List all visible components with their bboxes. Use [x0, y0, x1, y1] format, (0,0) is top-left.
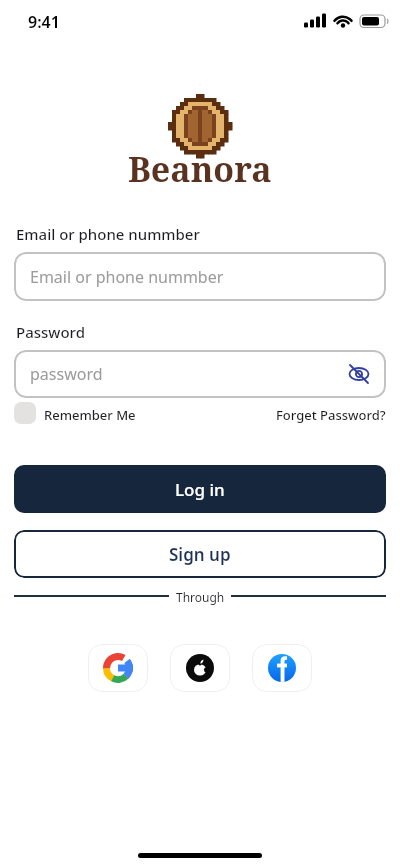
button[interactable]: Log in: [14, 465, 386, 513]
button[interactable]: [88, 644, 148, 692]
staticText: Beanora: [128, 146, 272, 192]
staticText: Email or phone nummber: [16, 224, 200, 244]
staticText: Sign up: [169, 543, 231, 566]
button[interactable]: Remember Me: [44, 406, 136, 424]
staticText: 9:41: [28, 11, 60, 33]
button[interactable]: [346, 361, 372, 387]
button[interactable]: [14, 402, 36, 424]
staticText: Email or phone nummber: [30, 266, 224, 288]
button[interactable]: Forget Password?: [276, 406, 386, 424]
button[interactable]: password: [14, 350, 386, 398]
button[interactable]: Sign up: [14, 530, 386, 578]
staticText: password: [30, 363, 103, 385]
staticText: Password: [16, 322, 85, 342]
button[interactable]: [252, 644, 312, 692]
staticText: Log in: [175, 478, 225, 501]
button[interactable]: Email or phone nummber: [14, 252, 386, 301]
staticText: Through: [176, 589, 225, 605]
button[interactable]: [170, 644, 230, 692]
